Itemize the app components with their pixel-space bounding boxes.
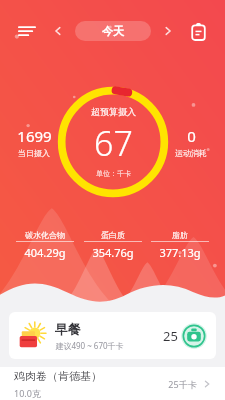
staticText: 建议490 ~ 670千卡 [55,340,124,351]
button[interactable]: Next day [157,20,179,42]
button[interactable]: Menu [10,14,44,48]
staticText: 10.0克 [14,387,41,399]
staticText: 鸡肉卷（肯德基） [14,369,102,383]
staticText: 早餐 [55,321,81,337]
staticText: 0 [187,126,196,146]
staticText: 超预算摄入 [91,106,136,117]
button[interactable]: 今天 [75,21,151,41]
staticText: 67 [94,120,133,166]
staticText: 碳水化合物 [25,230,65,240]
staticText: 25千卡 [168,378,197,390]
staticText: 377.13g [159,245,201,260]
button[interactable]: 早餐 [9,312,216,359]
staticText: 当日摄入 [18,148,50,158]
button[interactable]: Records [183,16,213,46]
staticText: 单位：千卡 [96,169,131,178]
button[interactable]: Previous day [47,20,69,42]
staticText: 今天 [102,24,124,38]
staticText: 25 [163,327,178,345]
staticText: 1699 [17,126,52,146]
button[interactable]: Add photo [181,323,207,349]
staticText: 354.76g [92,245,134,260]
button[interactable]: 鸡肉卷（肯德基） [0,367,225,400]
staticText: 运动消耗 [175,148,207,158]
staticText: 蛋白质 [101,230,125,240]
staticText: 404.29g [24,245,66,260]
staticText: 脂肪 [172,230,188,240]
